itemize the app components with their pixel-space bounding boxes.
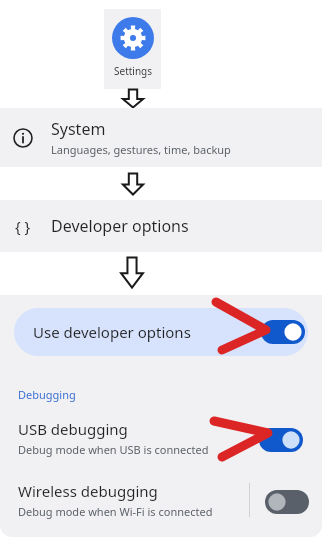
staticText: Debugging: [18, 387, 76, 402]
button[interactable]: Wireless debugging: [0, 474, 322, 526]
staticText: System: [51, 118, 106, 140]
staticText: Wireless debugging: [18, 481, 158, 501]
staticText: USB debugging: [18, 419, 128, 439]
staticText: { }: [15, 216, 31, 236]
button[interactable]: Use developer options: [14, 308, 308, 356]
button[interactable]: System: [0, 108, 322, 167]
staticText: Debug mode when Wi-Fi is connected: [18, 504, 213, 519]
button[interactable]: USB debugging: [0, 412, 322, 464]
staticText: Languages, gestures, time, backup: [51, 142, 231, 157]
button[interactable]: Settings app: [104, 9, 161, 89]
staticText: Settings: [114, 64, 153, 78]
button[interactable]: { }: [0, 200, 322, 252]
staticText: Developer options: [51, 215, 189, 237]
staticText: Debug mode when USB is connected: [18, 442, 209, 457]
staticText: Use developer options: [33, 322, 191, 342]
